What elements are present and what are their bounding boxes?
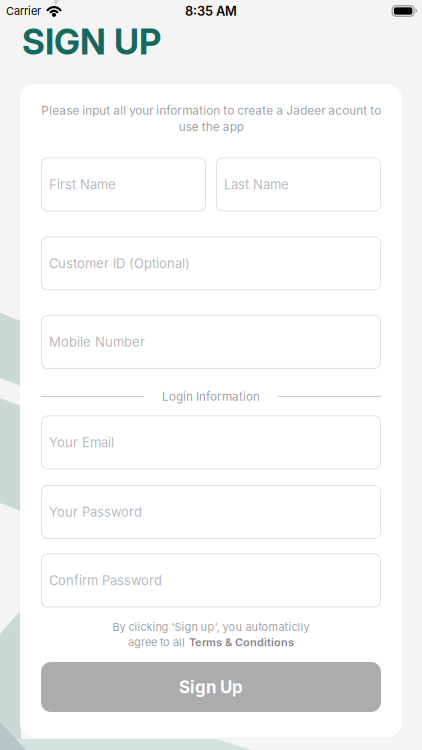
staticText: Please input all your information to cre… <box>41 103 381 134</box>
button[interactable]: Terms & Conditions <box>189 636 294 649</box>
staticText: Carrier <box>6 4 41 18</box>
staticText: Sign Up <box>179 677 243 697</box>
staticText: Login Information <box>162 389 260 403</box>
button[interactable]: Mobile Number <box>41 315 381 369</box>
staticText: 8:35 AM <box>185 3 237 19</box>
button[interactable]: Confirm Password <box>41 553 381 607</box>
staticText: Last Name <box>224 176 289 192</box>
staticText: By clicking 'Sign up', you automaticlly <box>112 620 309 634</box>
staticText: SIGN UP <box>22 20 161 63</box>
staticText: First Name <box>49 176 116 192</box>
staticText: Mobile Number <box>49 334 145 350</box>
staticText: Your Email <box>49 434 114 450</box>
staticText: Terms & Conditions <box>189 636 294 649</box>
button[interactable]: Your Email <box>41 415 381 469</box>
button[interactable]: Customer ID (Optional) <box>41 236 381 290</box>
staticText: Your Password <box>49 504 142 520</box>
staticText: Customer ID (Optional) <box>49 255 190 271</box>
button[interactable]: Last Name <box>216 157 381 211</box>
button[interactable]: Your Password <box>41 485 381 539</box>
staticText: agree to all <box>128 636 185 649</box>
button[interactable]: First Name <box>41 157 206 211</box>
button[interactable]: Sign Up <box>41 662 381 712</box>
staticText: Confirm Password <box>49 572 162 588</box>
